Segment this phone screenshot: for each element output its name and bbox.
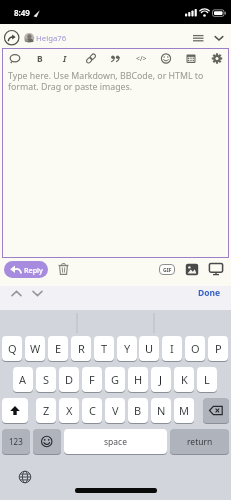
button[interactable]: B <box>31 50 49 67</box>
button[interactable]: O <box>185 336 205 361</box>
staticText: Reply <box>24 265 43 275</box>
staticText: N <box>157 403 166 418</box>
button[interactable] <box>189 32 207 45</box>
staticText: return <box>187 436 213 448</box>
staticText: P <box>215 341 222 356</box>
button[interactable] <box>107 50 125 67</box>
button[interactable]: 123 <box>2 429 30 454</box>
button[interactable]: A <box>13 367 33 392</box>
button[interactable]: W <box>25 336 45 361</box>
button[interactable]: K <box>174 367 194 392</box>
button[interactable] <box>208 50 226 67</box>
staticText: A <box>19 372 27 387</box>
button[interactable] <box>182 50 200 67</box>
button[interactable]: D <box>59 367 79 392</box>
staticText: G <box>111 372 120 387</box>
staticText: T <box>101 341 108 356</box>
button[interactable]: GIF <box>159 264 175 275</box>
staticText: B <box>37 53 43 65</box>
button[interactable]: P <box>208 336 228 361</box>
staticText: GIF <box>163 266 172 273</box>
staticText: space <box>104 436 127 448</box>
staticText: F <box>89 372 95 387</box>
staticText: Helga76 <box>36 33 67 44</box>
button[interactable] <box>8 287 25 300</box>
button[interactable] <box>82 50 100 67</box>
button[interactable]: Y <box>117 336 137 361</box>
staticText: U <box>145 341 154 356</box>
button[interactable]: H <box>128 367 148 392</box>
button[interactable]: T <box>94 336 114 361</box>
button[interactable] <box>29 287 46 300</box>
staticText: M <box>179 403 189 418</box>
staticText: O <box>191 341 200 356</box>
staticText: E <box>55 341 62 356</box>
staticText: J <box>159 372 163 387</box>
staticText: L <box>204 372 210 387</box>
staticText: Z <box>43 403 50 418</box>
button[interactable] <box>157 50 175 67</box>
button[interactable]: U <box>139 336 159 361</box>
staticText: B <box>134 403 142 418</box>
button[interactable] <box>185 263 199 276</box>
button[interactable] <box>203 398 229 423</box>
staticText: 8:49 <box>14 7 30 18</box>
staticText: K <box>181 372 188 387</box>
button[interactable]: Reply <box>4 261 48 278</box>
button[interactable]: Done <box>192 285 226 301</box>
button[interactable]: </> <box>132 50 150 67</box>
button[interactable]: space <box>64 429 167 454</box>
staticText: R <box>78 341 85 356</box>
button[interactable] <box>33 429 61 454</box>
staticText: H <box>134 372 143 387</box>
staticText: Q <box>8 341 17 356</box>
button[interactable] <box>2 398 28 423</box>
button[interactable]: G <box>105 367 125 392</box>
staticText: </> <box>136 54 147 63</box>
button[interactable]: F <box>82 367 102 392</box>
button[interactable]: V <box>105 398 125 423</box>
button[interactable]: M <box>174 398 194 423</box>
button[interactable] <box>6 50 24 67</box>
button[interactable]: S <box>36 367 56 392</box>
staticText: D <box>65 372 74 387</box>
staticText: Done <box>198 287 221 299</box>
staticText: 123 <box>9 436 23 447</box>
staticText: I <box>170 341 174 356</box>
button[interactable]: L <box>197 367 217 392</box>
button[interactable]: I <box>162 336 182 361</box>
button[interactable]: B <box>128 398 148 423</box>
button[interactable] <box>208 262 224 276</box>
staticText: X <box>66 403 73 418</box>
staticText: W <box>30 341 41 356</box>
button[interactable]: Q <box>2 336 22 361</box>
button[interactable] <box>14 466 36 488</box>
staticText: Type here. Use Markdown, BBCode, or HTML… <box>8 70 204 93</box>
button[interactable]: R <box>71 336 91 361</box>
button[interactable]: I <box>56 50 74 67</box>
button[interactable]: E <box>48 336 68 361</box>
staticText: I <box>63 53 67 65</box>
button[interactable]: Helga76 <box>24 32 80 44</box>
button[interactable]: Z <box>36 398 56 423</box>
staticText: V <box>112 403 119 418</box>
button[interactable]: return <box>170 429 229 454</box>
button[interactable]: J <box>151 367 171 392</box>
button[interactable] <box>4 30 20 46</box>
staticText: S <box>43 372 50 387</box>
staticText: Y <box>124 341 131 356</box>
button[interactable]: N <box>151 398 171 423</box>
button[interactable] <box>212 32 226 45</box>
button[interactable] <box>56 261 71 277</box>
staticText: C <box>89 403 96 418</box>
button[interactable]: X <box>59 398 79 423</box>
button[interactable]: C <box>82 398 102 423</box>
